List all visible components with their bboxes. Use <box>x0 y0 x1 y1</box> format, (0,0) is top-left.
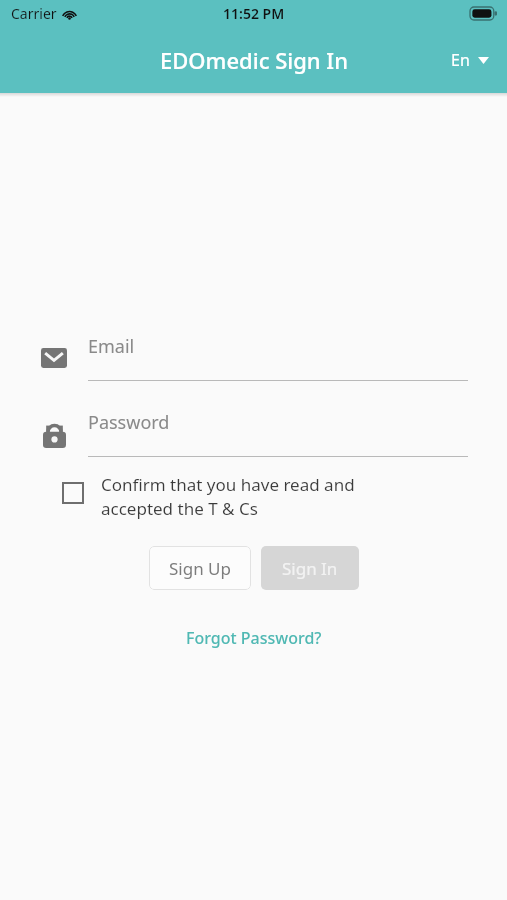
staticText: Sign Up <box>169 557 231 580</box>
button[interactable]: Email <box>38 334 468 381</box>
button[interactable]: Sign Up <box>149 546 251 590</box>
staticText: Carrier <box>11 4 57 23</box>
staticText: Forgot Password? <box>186 627 322 649</box>
other: Password <box>43 421 66 448</box>
button[interactable]: Confirm that you have read and accepted … <box>62 473 469 520</box>
staticText: Sign In <box>282 557 338 580</box>
staticText: EDOmedic Sign In <box>160 45 348 75</box>
staticText: En <box>451 49 470 71</box>
staticText: Confirm that you have read and accepted … <box>101 473 355 520</box>
button[interactable]: En <box>445 43 495 77</box>
staticText: Password <box>88 410 170 435</box>
button[interactable]: Forgot Password? <box>178 623 330 653</box>
staticText: Email <box>88 334 135 359</box>
button[interactable]: Password <box>38 410 468 457</box>
other: Email <box>41 348 67 368</box>
staticText: 11:52 PM <box>223 4 285 23</box>
button[interactable]: Sign In <box>261 546 359 590</box>
